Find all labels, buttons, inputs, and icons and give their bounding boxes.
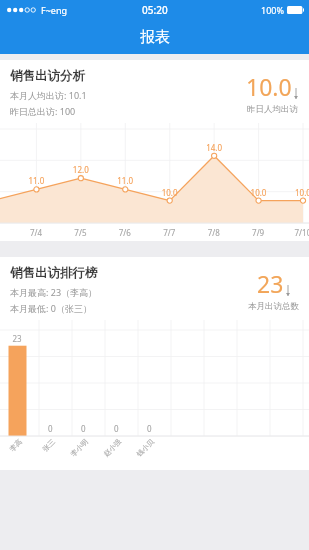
staticText: 本月人均出访: 10.1 [10, 89, 87, 101]
staticText: 本月最高: 23（李高） [10, 286, 98, 298]
button[interactable]: 报表 [0, 20, 309, 54]
staticText: 昨日总出访: 100 [10, 105, 76, 117]
staticText: 23 [257, 268, 284, 299]
button[interactable]: 销售出访分析 [0, 60, 309, 241]
staticText: F~eng [41, 4, 67, 16]
button[interactable]: 销售出访排行榜 [0, 257, 309, 470]
staticText: 本月出访总数 [248, 301, 299, 312]
staticText: 05:20 [142, 3, 168, 17]
staticText: 10.0 [246, 71, 292, 102]
staticText: 销售出访分析 [10, 68, 85, 84]
staticText: 昨日人均出访 [247, 104, 298, 115]
staticText: 报表 [140, 28, 170, 47]
staticText: 本月最低: 0（张三） [10, 302, 92, 314]
staticText: 销售出访排行榜 [10, 265, 98, 281]
staticText: 100% [261, 4, 284, 16]
